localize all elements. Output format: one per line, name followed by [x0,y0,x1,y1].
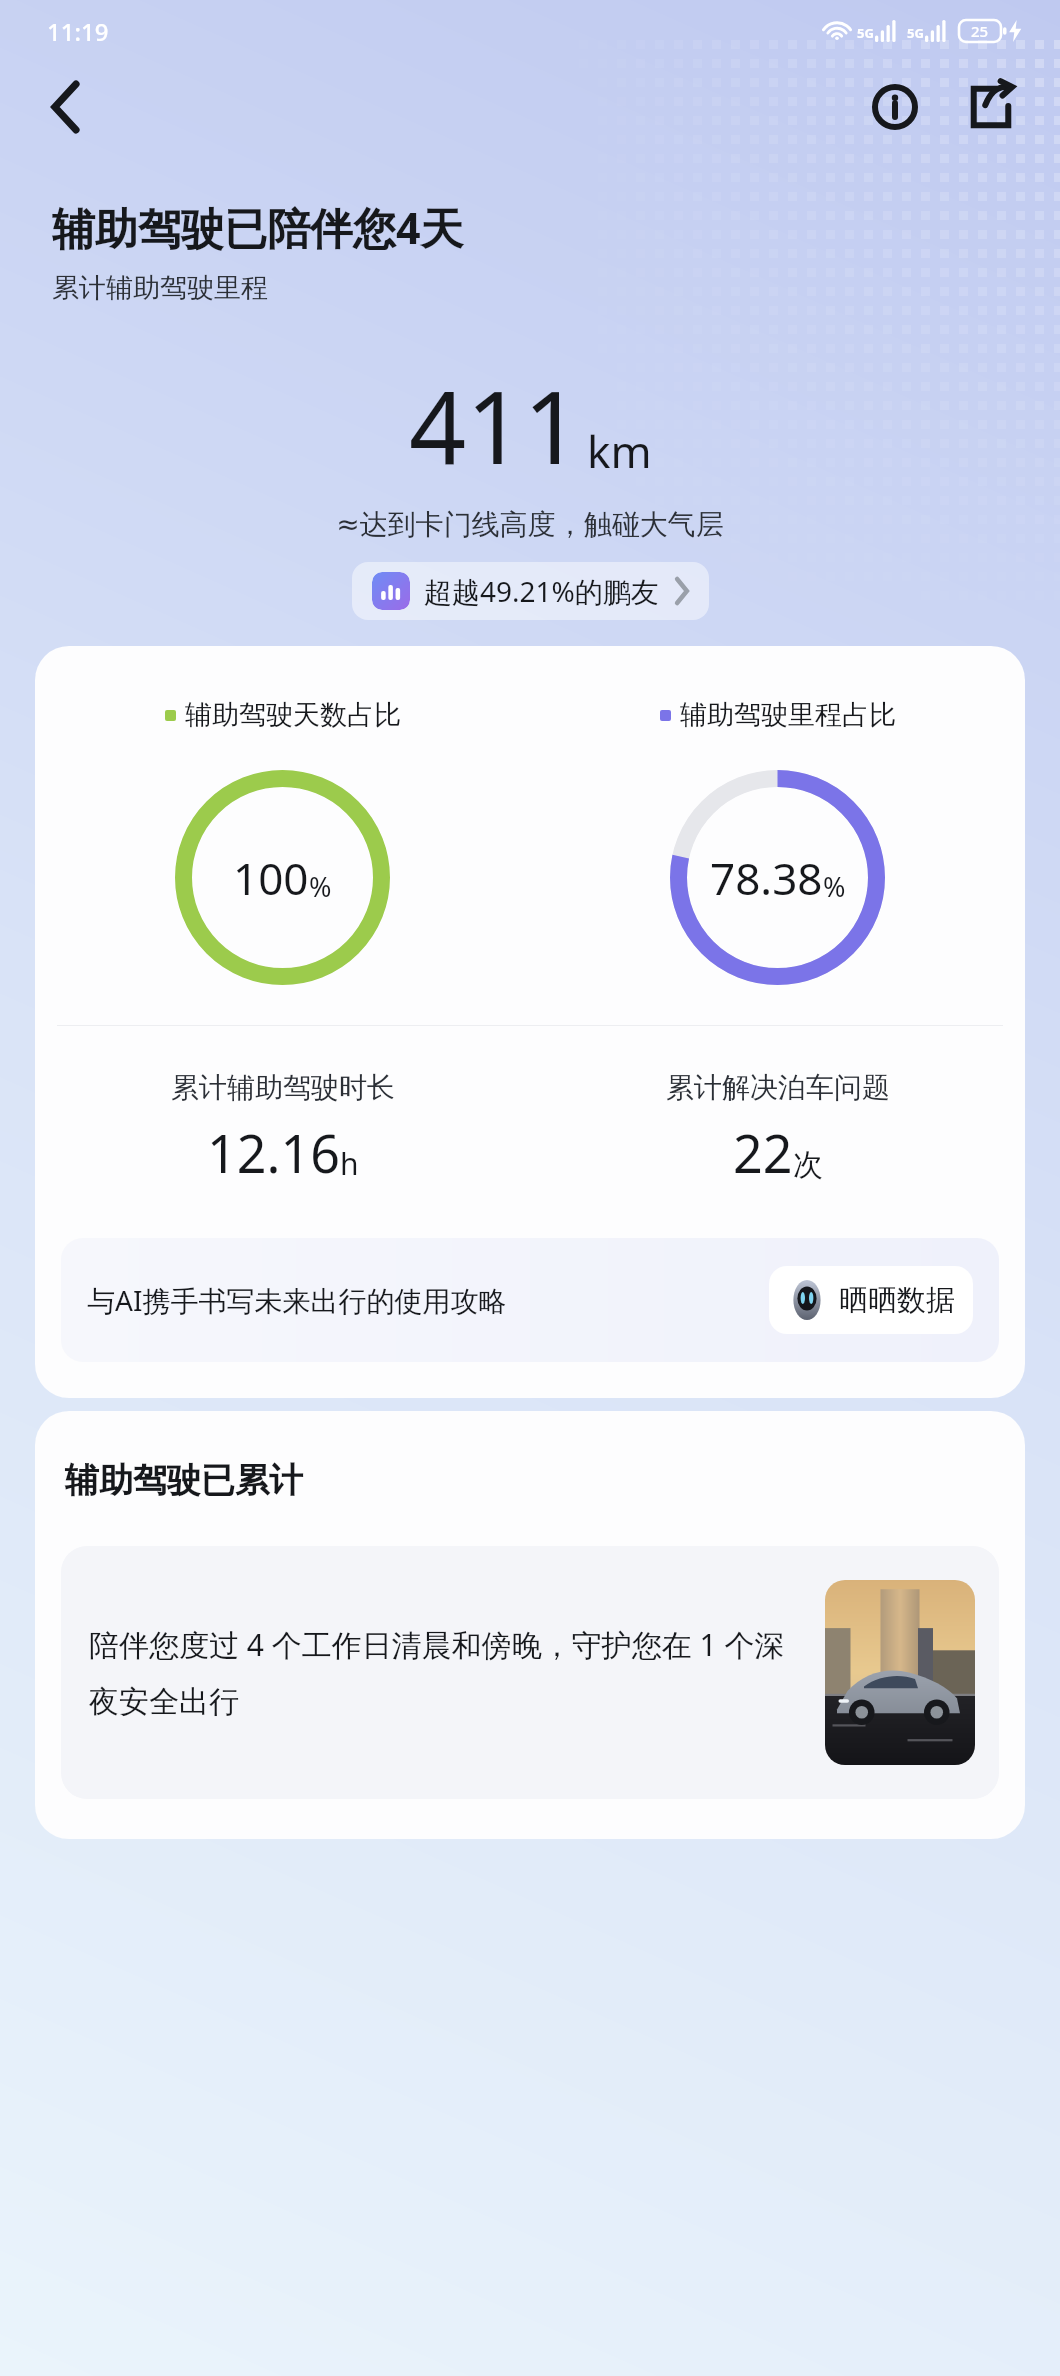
staticText: km [587,421,652,481]
button[interactable]: Info [858,70,932,144]
staticText: % [823,868,846,905]
staticText: h [340,1143,359,1184]
staticText: 11:19 [47,15,109,48]
staticText: 5G [857,24,874,42]
staticText: 次 [793,1146,823,1184]
button[interactable]: 与AI携手书写未来出行的使用攻略 [61,1238,999,1362]
staticText: 25 [971,21,989,41]
button[interactable]: 超越49.21%的鹏友 [352,562,709,620]
staticText: 5G [907,24,924,42]
button[interactable]: Back [30,71,102,143]
staticText: 晒晒数据 [839,1282,955,1319]
button[interactable]: 陪伴您度过 4 个工作日清晨和傍晚，守护您在 1 个深夜安全出行 [61,1546,999,1799]
staticText: 陪伴您度过 4 个工作日清晨和傍晚，守护您在 1 个深夜安全出行 [89,1624,807,1721]
staticText: ≈达到卡门线高度，触碰大气层 [0,507,1060,542]
staticText: 辅助驾驶里程占比 [680,698,896,732]
staticText: 辅助驾驶已累计 [65,1459,303,1502]
button[interactable]: 晒晒数据 [769,1266,973,1334]
staticText: 与AI携手书写未来出行的使用攻略 [87,1281,753,1319]
staticText: 辅助驾驶天数占比 [185,698,401,732]
staticText: 累计辅助驾驶时长 [171,1070,395,1105]
staticText: 411 [409,357,581,493]
staticText: 22 [733,1117,793,1188]
staticText: 100 [233,848,309,908]
staticText: 累计辅助驾驶里程 [52,271,268,305]
staticText: 辅助驾驶已陪伴您4天 [52,198,464,257]
staticText: 12.16 [207,1117,340,1188]
staticText: % [309,868,332,905]
button[interactable]: Share [954,70,1028,144]
staticText: 超越49.21%的鹏友 [424,572,659,610]
staticText: 78.38 [710,848,823,908]
staticText: 累计解决泊车问题 [666,1070,890,1105]
